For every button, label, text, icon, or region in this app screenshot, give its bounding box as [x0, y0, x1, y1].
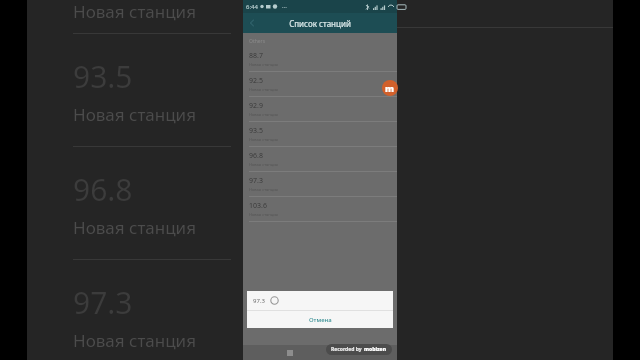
staticText: Список станций — [289, 18, 351, 29]
staticText: Новая станция — [249, 187, 278, 192]
staticText: Новая станция — [73, 329, 196, 352]
staticText: Новая станция — [73, 0, 196, 23]
staticText: 92.9 — [249, 101, 263, 111]
button[interactable]: 92.5 — [243, 72, 397, 96]
staticText: 96.8 — [249, 151, 263, 161]
staticText: Новая станция — [249, 162, 278, 167]
button[interactable]: Back — [245, 16, 259, 30]
staticText: 6:44 — [246, 3, 258, 11]
staticText: 92.5 — [249, 76, 263, 86]
staticText: Новая станция — [249, 62, 278, 67]
staticText: Новая станция — [73, 216, 196, 239]
staticText: mobizen — [364, 346, 387, 353]
staticText: Новая станция — [73, 103, 196, 126]
staticText: Новая станция — [249, 112, 278, 117]
staticText: Others — [249, 38, 266, 45]
staticText: 88.7 — [249, 51, 263, 61]
staticText: Новая станция — [249, 137, 278, 142]
staticText: Новая станция — [249, 87, 278, 92]
staticText: 103.6 — [249, 201, 267, 211]
staticText: Новая станция — [249, 212, 278, 217]
staticText: ··· — [282, 3, 287, 11]
staticText: Отмена — [309, 316, 332, 324]
staticText: 96.8 — [73, 169, 133, 210]
staticText: Recorded by — [331, 346, 362, 353]
staticText: 97.3 — [73, 282, 133, 323]
staticText: 97.3 — [249, 176, 263, 186]
button[interactable]: Отмена — [247, 311, 393, 328]
staticText: 93.5 — [249, 126, 263, 136]
staticText: 97.3 — [253, 297, 265, 305]
staticText: 93.5 — [73, 56, 133, 97]
staticText: m — [385, 82, 395, 94]
